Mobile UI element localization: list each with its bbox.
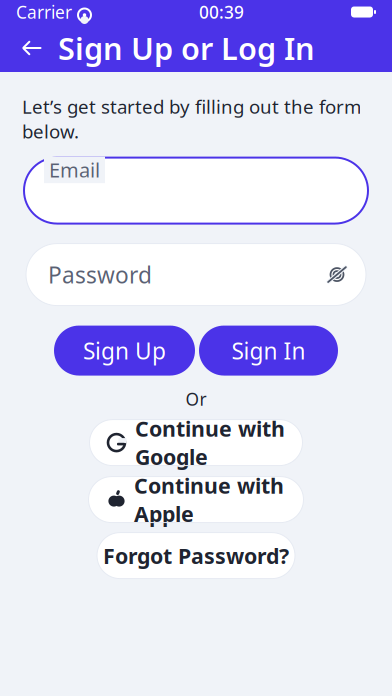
staticText: Sign Up or Log In — [58, 28, 315, 68]
button[interactable]: Forgot Password? — [97, 533, 295, 579]
staticText: Carrier — [16, 0, 72, 23]
staticText: Email — [49, 157, 100, 183]
staticText: Continue with Apple — [134, 471, 284, 528]
staticText: Forgot Password? — [103, 541, 289, 570]
staticText: Sign In — [231, 335, 305, 366]
button[interactable]: Sign Up — [54, 326, 195, 376]
button[interactable]: Back — [10, 26, 54, 70]
staticText: Password — [48, 259, 152, 290]
button[interactable]: Continue with Apple — [88, 477, 303, 523]
staticText: Or — [185, 388, 206, 411]
staticText: 00:39 — [199, 0, 244, 23]
staticText: Continue with Google — [135, 414, 285, 471]
staticText: Let’s get started by filling out the for… — [22, 94, 361, 144]
button[interactable]: Sign In — [199, 326, 338, 376]
button[interactable]: Continue with Google — [89, 420, 302, 466]
button[interactable]: Show password — [320, 258, 354, 292]
staticText: Sign Up — [83, 335, 166, 366]
